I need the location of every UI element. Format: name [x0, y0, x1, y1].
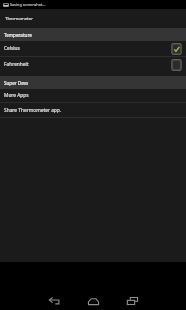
button[interactable]: Share Thermometer app.	[0, 103, 186, 117]
staticText: Temperature	[4, 32, 32, 38]
button[interactable]: Back	[42, 292, 67, 310]
staticText: Fahrenheit	[4, 61, 171, 68]
staticText: More Apps	[4, 92, 186, 99]
staticText: Celsius	[4, 45, 171, 52]
button[interactable]: Recent apps	[120, 292, 145, 310]
button[interactable]: Celsius	[0, 41, 186, 56]
staticText: Super Devs	[4, 80, 29, 86]
staticText: Thermometer	[5, 15, 34, 21]
button[interactable]: More Apps	[0, 89, 186, 102]
staticText: Share Thermometer app.	[4, 107, 186, 114]
button[interactable]: Fahrenheit	[0, 57, 186, 72]
button[interactable]: Home	[81, 292, 106, 310]
staticText: Saving screenshot...	[10, 2, 46, 7]
